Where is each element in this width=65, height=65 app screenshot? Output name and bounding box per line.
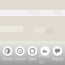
button[interactable]: Listen — [13, 46, 26, 61]
staticText: Listen — [14, 56, 26, 62]
button[interactable]: Read — [1, 46, 14, 61]
staticText: Reply — [52, 56, 63, 62]
staticText: Save — [28, 56, 36, 62]
staticText: Photos — [39, 53, 51, 64]
button[interactable]: Photos — [38, 46, 51, 61]
button[interactable]: Reply — [51, 46, 64, 61]
button[interactable]: Save — [26, 46, 39, 61]
staticText: Read — [2, 56, 12, 62]
